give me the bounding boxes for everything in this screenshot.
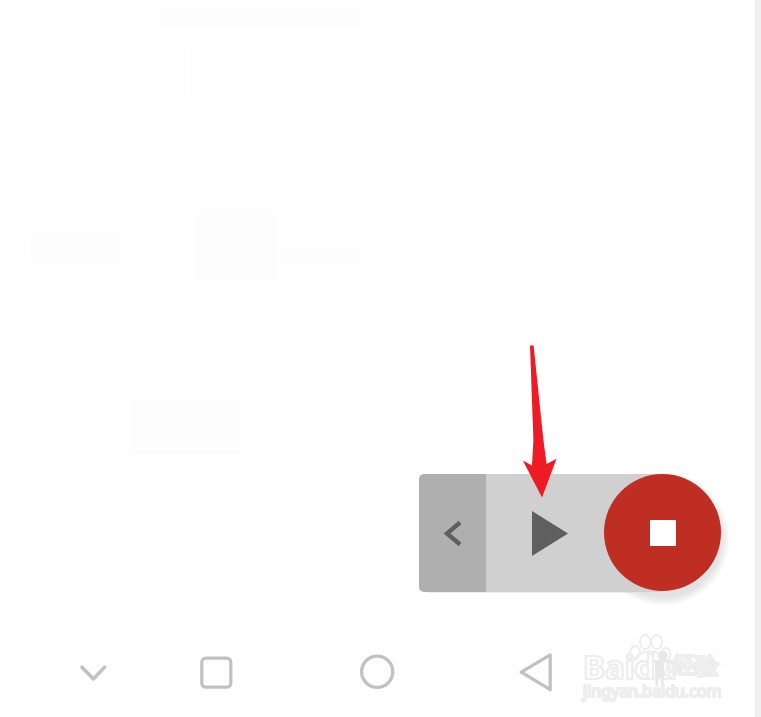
button[interactable]: Recent apps (185, 642, 245, 702)
button[interactable]: Play (486, 474, 665, 592)
button[interactable]: Back (505, 642, 565, 702)
button[interactable]: Stop recording (604, 474, 721, 591)
button[interactable]: Previous (419, 474, 486, 592)
staticText: 经验 (672, 652, 718, 681)
staticText: Baidu (583, 644, 677, 689)
button[interactable]: Hide keyboard (63, 642, 123, 702)
button[interactable]: Home (347, 642, 407, 702)
staticText: jingyan.baidu.com (583, 680, 722, 702)
